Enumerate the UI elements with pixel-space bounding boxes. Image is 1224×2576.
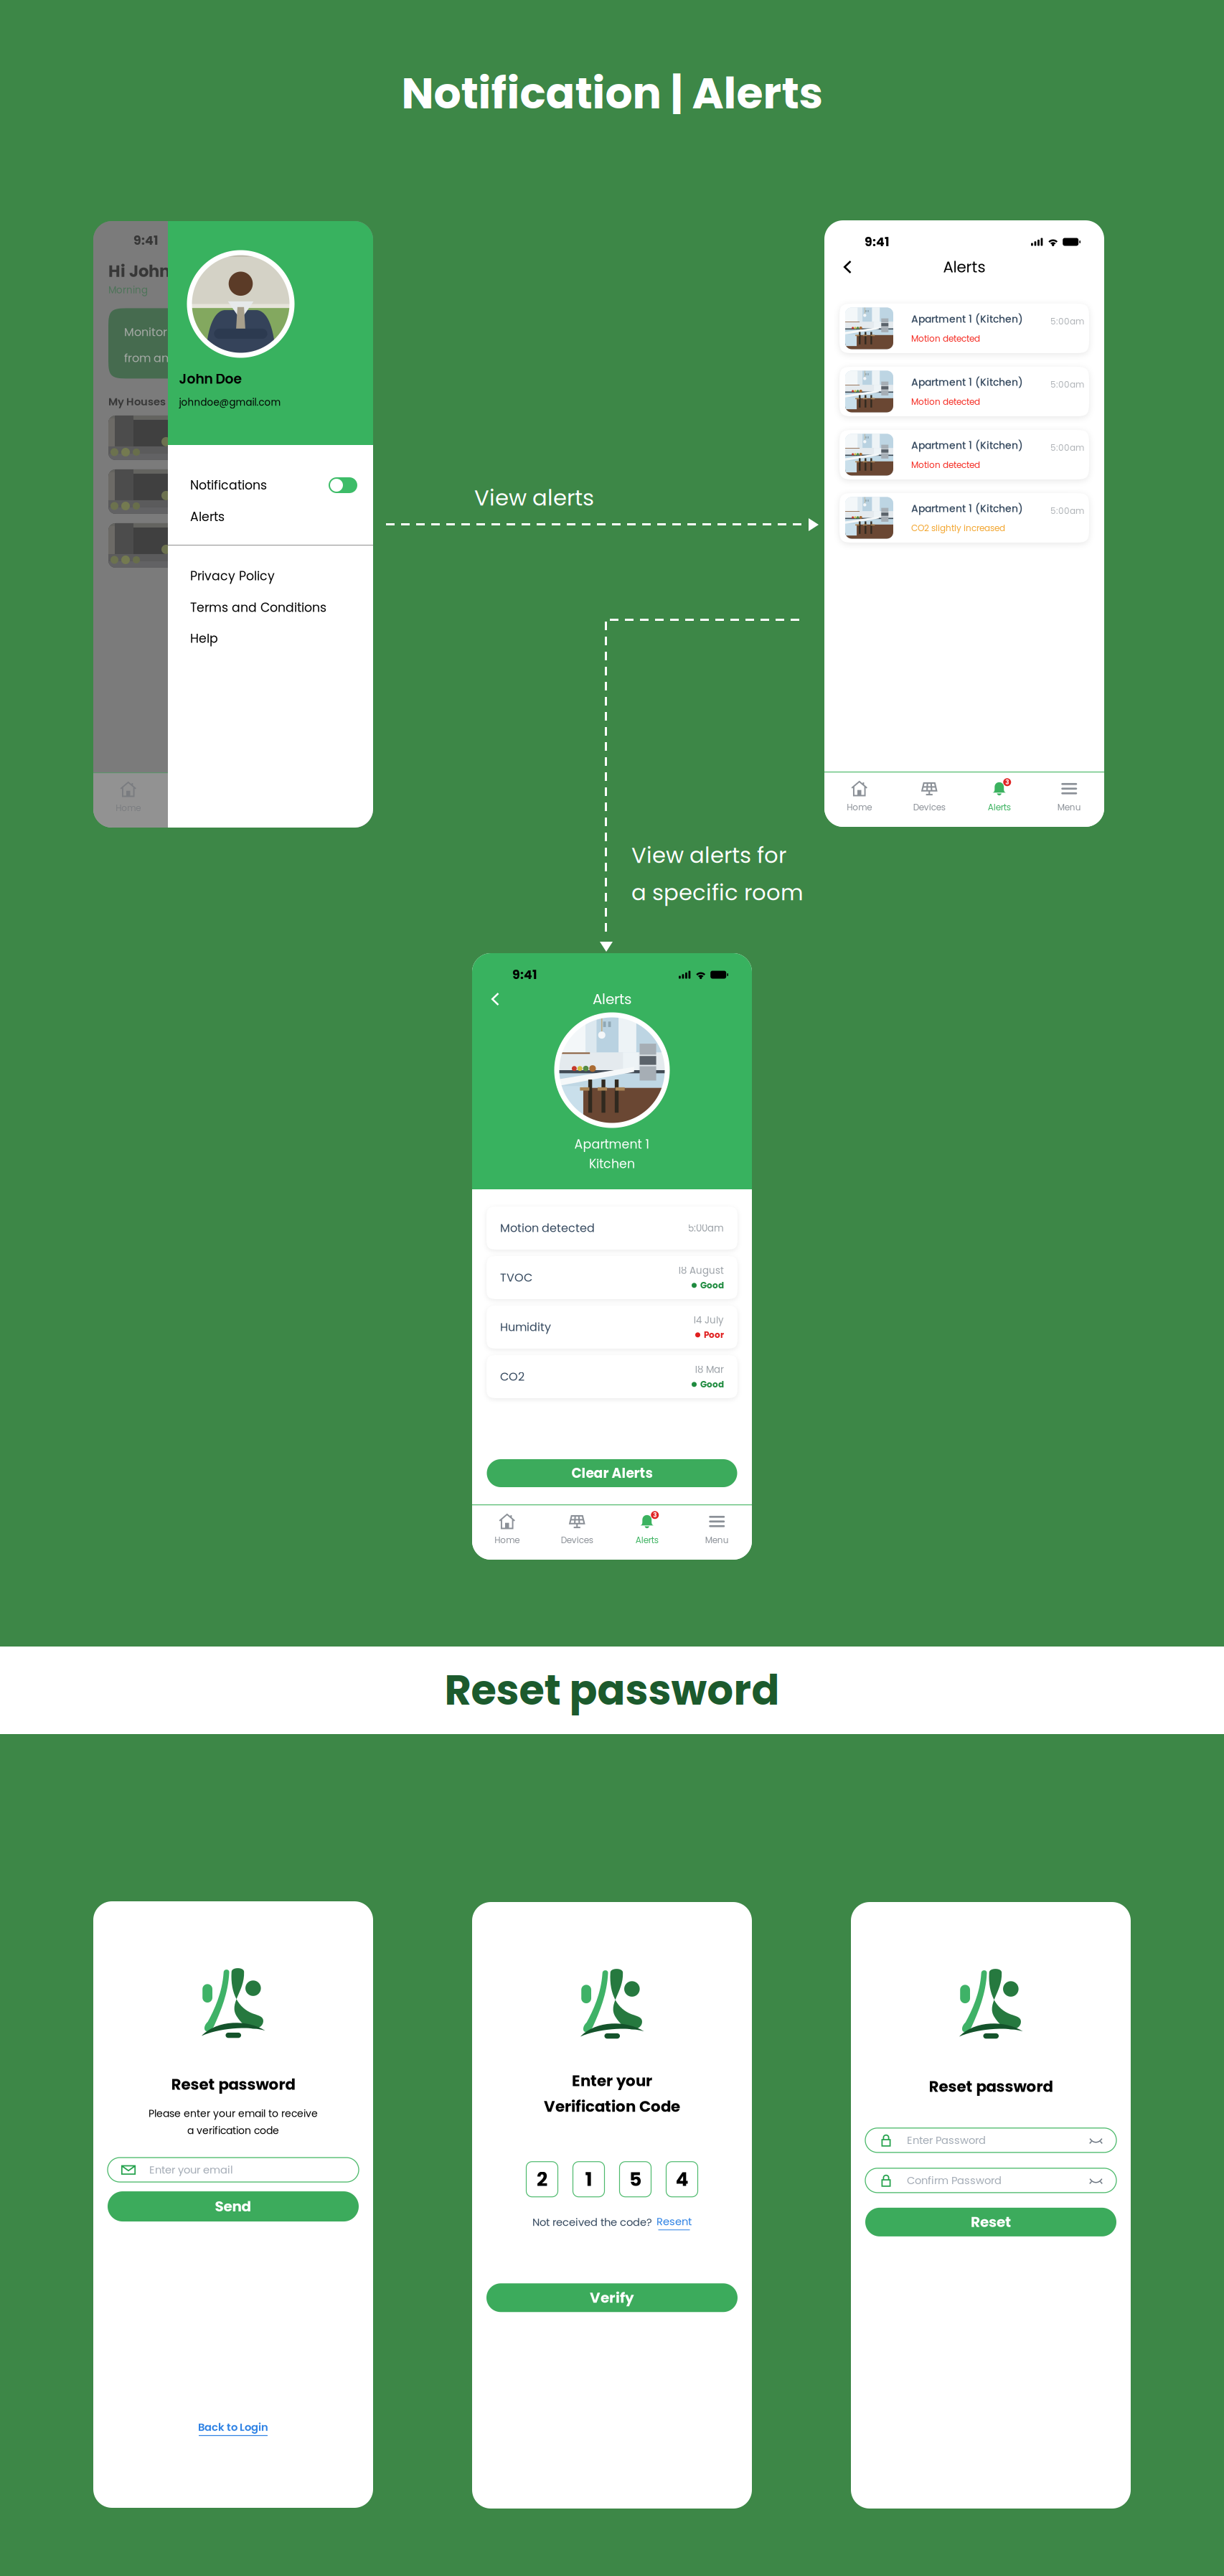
staticText: Devices [913,801,945,813]
staticText: Apartment [205,440,261,455]
staticText: Home [116,802,141,814]
staticText: Good [700,1378,724,1390]
button[interactable]: 3 [964,778,1034,816]
button[interactable]: Resent [656,2214,692,2230]
staticText: 9:41 [865,233,890,251]
staticText: Kitchen [589,1155,635,1173]
staticText: a specific room [631,877,804,908]
button[interactable]: TVOC [486,1256,738,1299]
staticText: Help [190,630,218,647]
button[interactable]: Motion detected [486,1207,738,1250]
button[interactable]: Home [472,1511,542,1548]
staticText: Poor [704,1329,724,1341]
button[interactable]: Apartment 1 (Kitchen) [839,430,1089,479]
staticText: John Doe [179,370,242,388]
button[interactable]: Back [838,255,858,279]
staticText: 5:00am [1050,379,1084,391]
staticText: 1 [585,2166,592,2193]
staticText: Reset password [929,2076,1053,2097]
staticText: Good [700,1279,724,1291]
button[interactable]: Apartment 1 (Kitchen) [839,493,1089,543]
button[interactable]: Help [168,623,373,654]
staticText: Terms and Conditions [190,599,326,616]
button[interactable]: Back to Login [198,2420,268,2436]
staticText: Reset password [444,1662,780,1719]
staticText: 5:00am [1050,442,1084,454]
button[interactable]: Terms and Conditions [168,592,373,623]
staticText: Motion detected [911,333,980,345]
staticText: Send [215,2196,251,2216]
staticText: View alerts for [631,840,786,871]
staticText: Menu [1057,801,1081,813]
staticText: Home [847,801,872,813]
staticText: Motion detected [500,1220,595,1236]
staticText: Resent [656,2214,692,2229]
button[interactable]: 3 [612,1511,682,1548]
staticText: 2 [537,2166,547,2193]
staticText: Notifications [190,477,267,494]
staticText: Apartment 1 (Kitchen) [911,502,1023,516]
staticText: Verify [590,2288,634,2308]
staticText: Apartment 1 (Kitchen) [911,375,1023,389]
staticText: 18 August [678,1264,724,1277]
staticText: 3 [653,1511,657,1519]
staticText: Enter your [572,2070,652,2091]
staticText: Home [494,1534,520,1546]
button[interactable]: Verify [486,2283,738,2312]
staticText: Clear Alerts [571,1464,653,1483]
staticText: from anywhere [124,350,210,366]
staticText: Alerts [988,801,1011,813]
staticText: 9:41 [133,232,159,249]
staticText: Monitor your home [124,324,231,340]
staticText: TVOC [500,1270,532,1286]
button[interactable]: Apartment [108,416,358,460]
button[interactable]: Apartment [108,523,358,568]
button[interactable]: CO2 [486,1355,738,1398]
button[interactable]: Home [93,779,163,816]
staticText: Humidity [500,1319,551,1335]
staticText: Verification Code [544,2096,680,2117]
staticText: Alerts [593,989,631,1009]
staticText: 14 July [693,1313,724,1327]
staticText: Not received the code? [532,2215,652,2229]
staticText: Enter your email [149,2162,233,2177]
button[interactable]: Apartment [108,469,358,514]
staticText: CO2 [500,1369,524,1385]
staticText: Apartment 1 [574,1135,650,1153]
button[interactable]: Apartment 1 (Kitchen) [839,304,1089,353]
button[interactable]: Devices [894,778,964,816]
button[interactable]: Devices [163,779,233,816]
button[interactable]: Humidity [486,1306,738,1349]
staticText: Motion detected [911,459,980,471]
button[interactable]: Clear Alerts [487,1459,737,1487]
button[interactable]: Apartment 1 (Kitchen) [839,367,1089,416]
staticText: 5:00am [1050,505,1084,517]
button[interactable]: Alerts [168,502,373,532]
staticText: Alerts [190,508,225,526]
staticText: 5 [629,2166,641,2193]
button[interactable]: Privacy Policy [168,560,373,592]
staticText: Notification | Alerts [401,63,823,123]
button[interactable]: Menu [682,1511,752,1548]
button[interactable]: Menu [1034,778,1104,816]
staticText: 9:41 [512,966,537,983]
button[interactable]: Notifications [168,469,373,502]
staticText: Hi John [108,260,170,283]
staticText: johndoe@gmail.com [179,396,281,409]
staticText: a verification code [187,2123,279,2138]
staticText: Devices [561,1534,593,1546]
staticText: Back to Login [198,2420,268,2434]
button[interactable]: Send [108,2191,359,2222]
staticText: Please enter your email to receive [149,2107,318,2121]
button[interactable]: Home [824,778,894,816]
button[interactable]: Back [486,987,505,1011]
button[interactable]: Reset [865,2208,1116,2236]
button[interactable]: Devices [542,1511,612,1548]
